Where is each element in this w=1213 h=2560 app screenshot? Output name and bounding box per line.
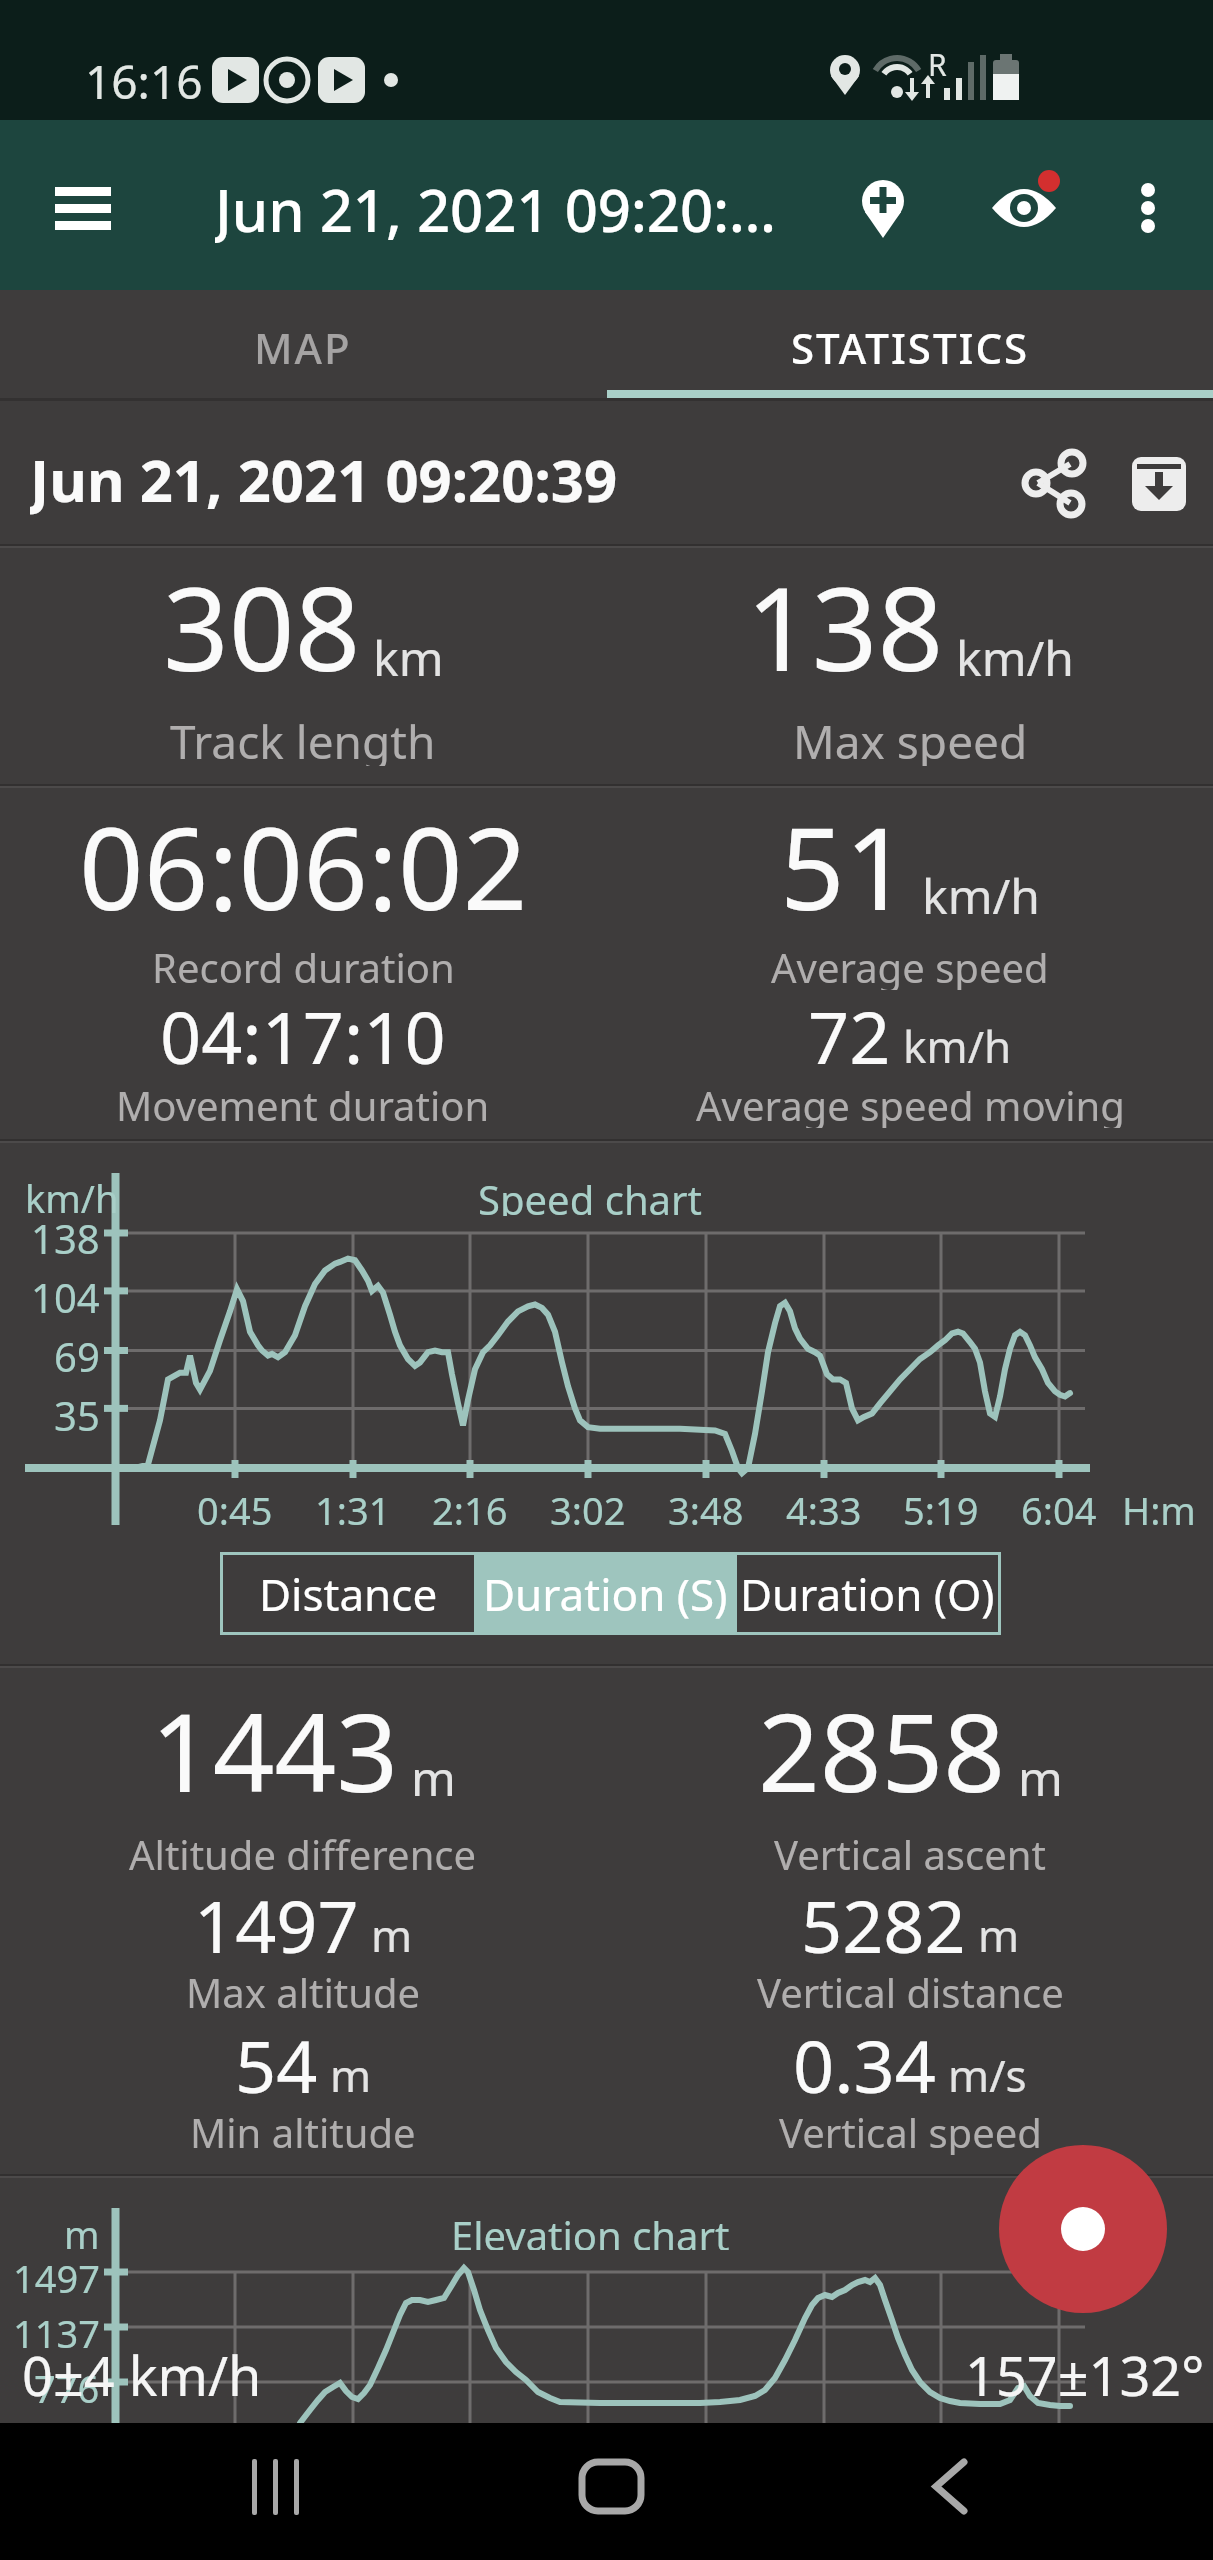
staticText: Vertical ascent xyxy=(774,1827,1046,1877)
staticText: Average speed moving xyxy=(696,1078,1125,1128)
staticText: 69 xyxy=(54,1329,100,1373)
staticText: km/h xyxy=(922,863,1041,928)
button[interactable]: STATISTICS xyxy=(607,300,1213,395)
button[interactable] xyxy=(1122,445,1202,525)
staticText: 104 xyxy=(31,1270,100,1314)
staticText: m xyxy=(64,2208,100,2250)
staticText: km/h xyxy=(903,1016,1012,1076)
staticText: 35 xyxy=(54,1388,100,1432)
button[interactable] xyxy=(981,165,1067,251)
button[interactable]: Duration (S) xyxy=(474,1552,737,1635)
button[interactable]: Duration (O) xyxy=(737,1555,998,1632)
staticText: m xyxy=(1018,1745,1063,1810)
staticText: Max altitude xyxy=(186,1965,421,2015)
button[interactable] xyxy=(1113,165,1199,251)
staticText: 4:33 xyxy=(786,1484,862,1530)
staticText: Duration (S) xyxy=(483,1564,728,1624)
staticText: 0±4 km/h xyxy=(22,2338,262,2400)
staticText: km xyxy=(373,625,444,690)
staticText: Elevation chart xyxy=(451,2208,730,2250)
staticText: Altitude difference xyxy=(129,1827,477,1877)
staticText: 138 xyxy=(746,548,944,705)
staticText: R xyxy=(928,44,947,80)
staticText: 1497 xyxy=(13,2252,100,2294)
button[interactable] xyxy=(999,2145,1167,2313)
staticText: Vertical distance xyxy=(757,1965,1064,2015)
button[interactable]: Distance xyxy=(223,1555,474,1632)
staticText: Jun 21, 2021 09:20:… xyxy=(215,170,776,246)
staticText: 6:04 xyxy=(1021,1484,1097,1530)
button[interactable] xyxy=(840,165,926,251)
button[interactable] xyxy=(30,175,140,245)
staticText: H:m xyxy=(1122,1484,1196,1530)
staticText: 3:48 xyxy=(668,1484,744,1530)
staticText: Max speed xyxy=(793,710,1028,766)
staticText: 776 xyxy=(34,2362,100,2404)
staticText: 04:17:10 xyxy=(160,987,446,1085)
staticText: 1:31 xyxy=(315,1484,391,1530)
staticText: Average speed xyxy=(771,940,1049,990)
staticText: m xyxy=(371,1905,413,1965)
button[interactable] xyxy=(1010,445,1090,525)
button[interactable] xyxy=(205,2443,345,2533)
staticText: Speed chart xyxy=(478,1172,702,1216)
staticText: 0:45 xyxy=(197,1484,273,1530)
button[interactable]: MAP xyxy=(0,300,606,395)
staticText: km/h xyxy=(25,1172,119,1216)
staticText: 157±132° xyxy=(965,2338,1205,2400)
staticText: Record duration xyxy=(152,940,455,990)
staticText: 72 xyxy=(808,987,891,1085)
staticText: 1497 xyxy=(194,1876,359,1974)
staticText: 51 xyxy=(780,789,910,943)
staticText: STATISTICS xyxy=(791,319,1030,376)
staticText: Jun 21, 2021 09:20:39 xyxy=(30,440,618,516)
button[interactable] xyxy=(880,2443,1020,2533)
staticText: 54 xyxy=(235,2016,318,2114)
staticText: Min altitude xyxy=(190,2105,416,2155)
staticText: Movement duration xyxy=(116,1078,490,1128)
staticText: Vertical speed xyxy=(779,2105,1042,2155)
staticText: MAP xyxy=(254,319,352,376)
staticText: 3:02 xyxy=(550,1484,626,1530)
staticText: 16:16 xyxy=(85,50,203,110)
staticText: Track length xyxy=(170,710,436,766)
staticText: m/s xyxy=(948,2045,1027,2105)
staticText: Distance xyxy=(259,1564,438,1624)
staticText: 1137 xyxy=(13,2307,100,2349)
staticText: Duration (O) xyxy=(740,1564,995,1624)
staticText: 138 xyxy=(31,1211,100,1255)
staticText: 0.34 xyxy=(793,2016,936,2114)
staticText: 308 xyxy=(163,548,361,705)
staticText: 2858 xyxy=(758,1677,1006,1824)
staticText: km/h xyxy=(956,625,1075,690)
staticText: 2:16 xyxy=(432,1484,508,1530)
staticText: m xyxy=(978,1905,1020,1965)
staticText: m xyxy=(330,2045,372,2105)
staticText: 5282 xyxy=(801,1876,966,1974)
staticText: 5:19 xyxy=(903,1484,979,1530)
staticText: m xyxy=(411,1745,456,1810)
staticText: 06:06:02 xyxy=(79,789,528,943)
staticText: 1443 xyxy=(151,1677,399,1824)
button[interactable] xyxy=(541,2443,681,2533)
